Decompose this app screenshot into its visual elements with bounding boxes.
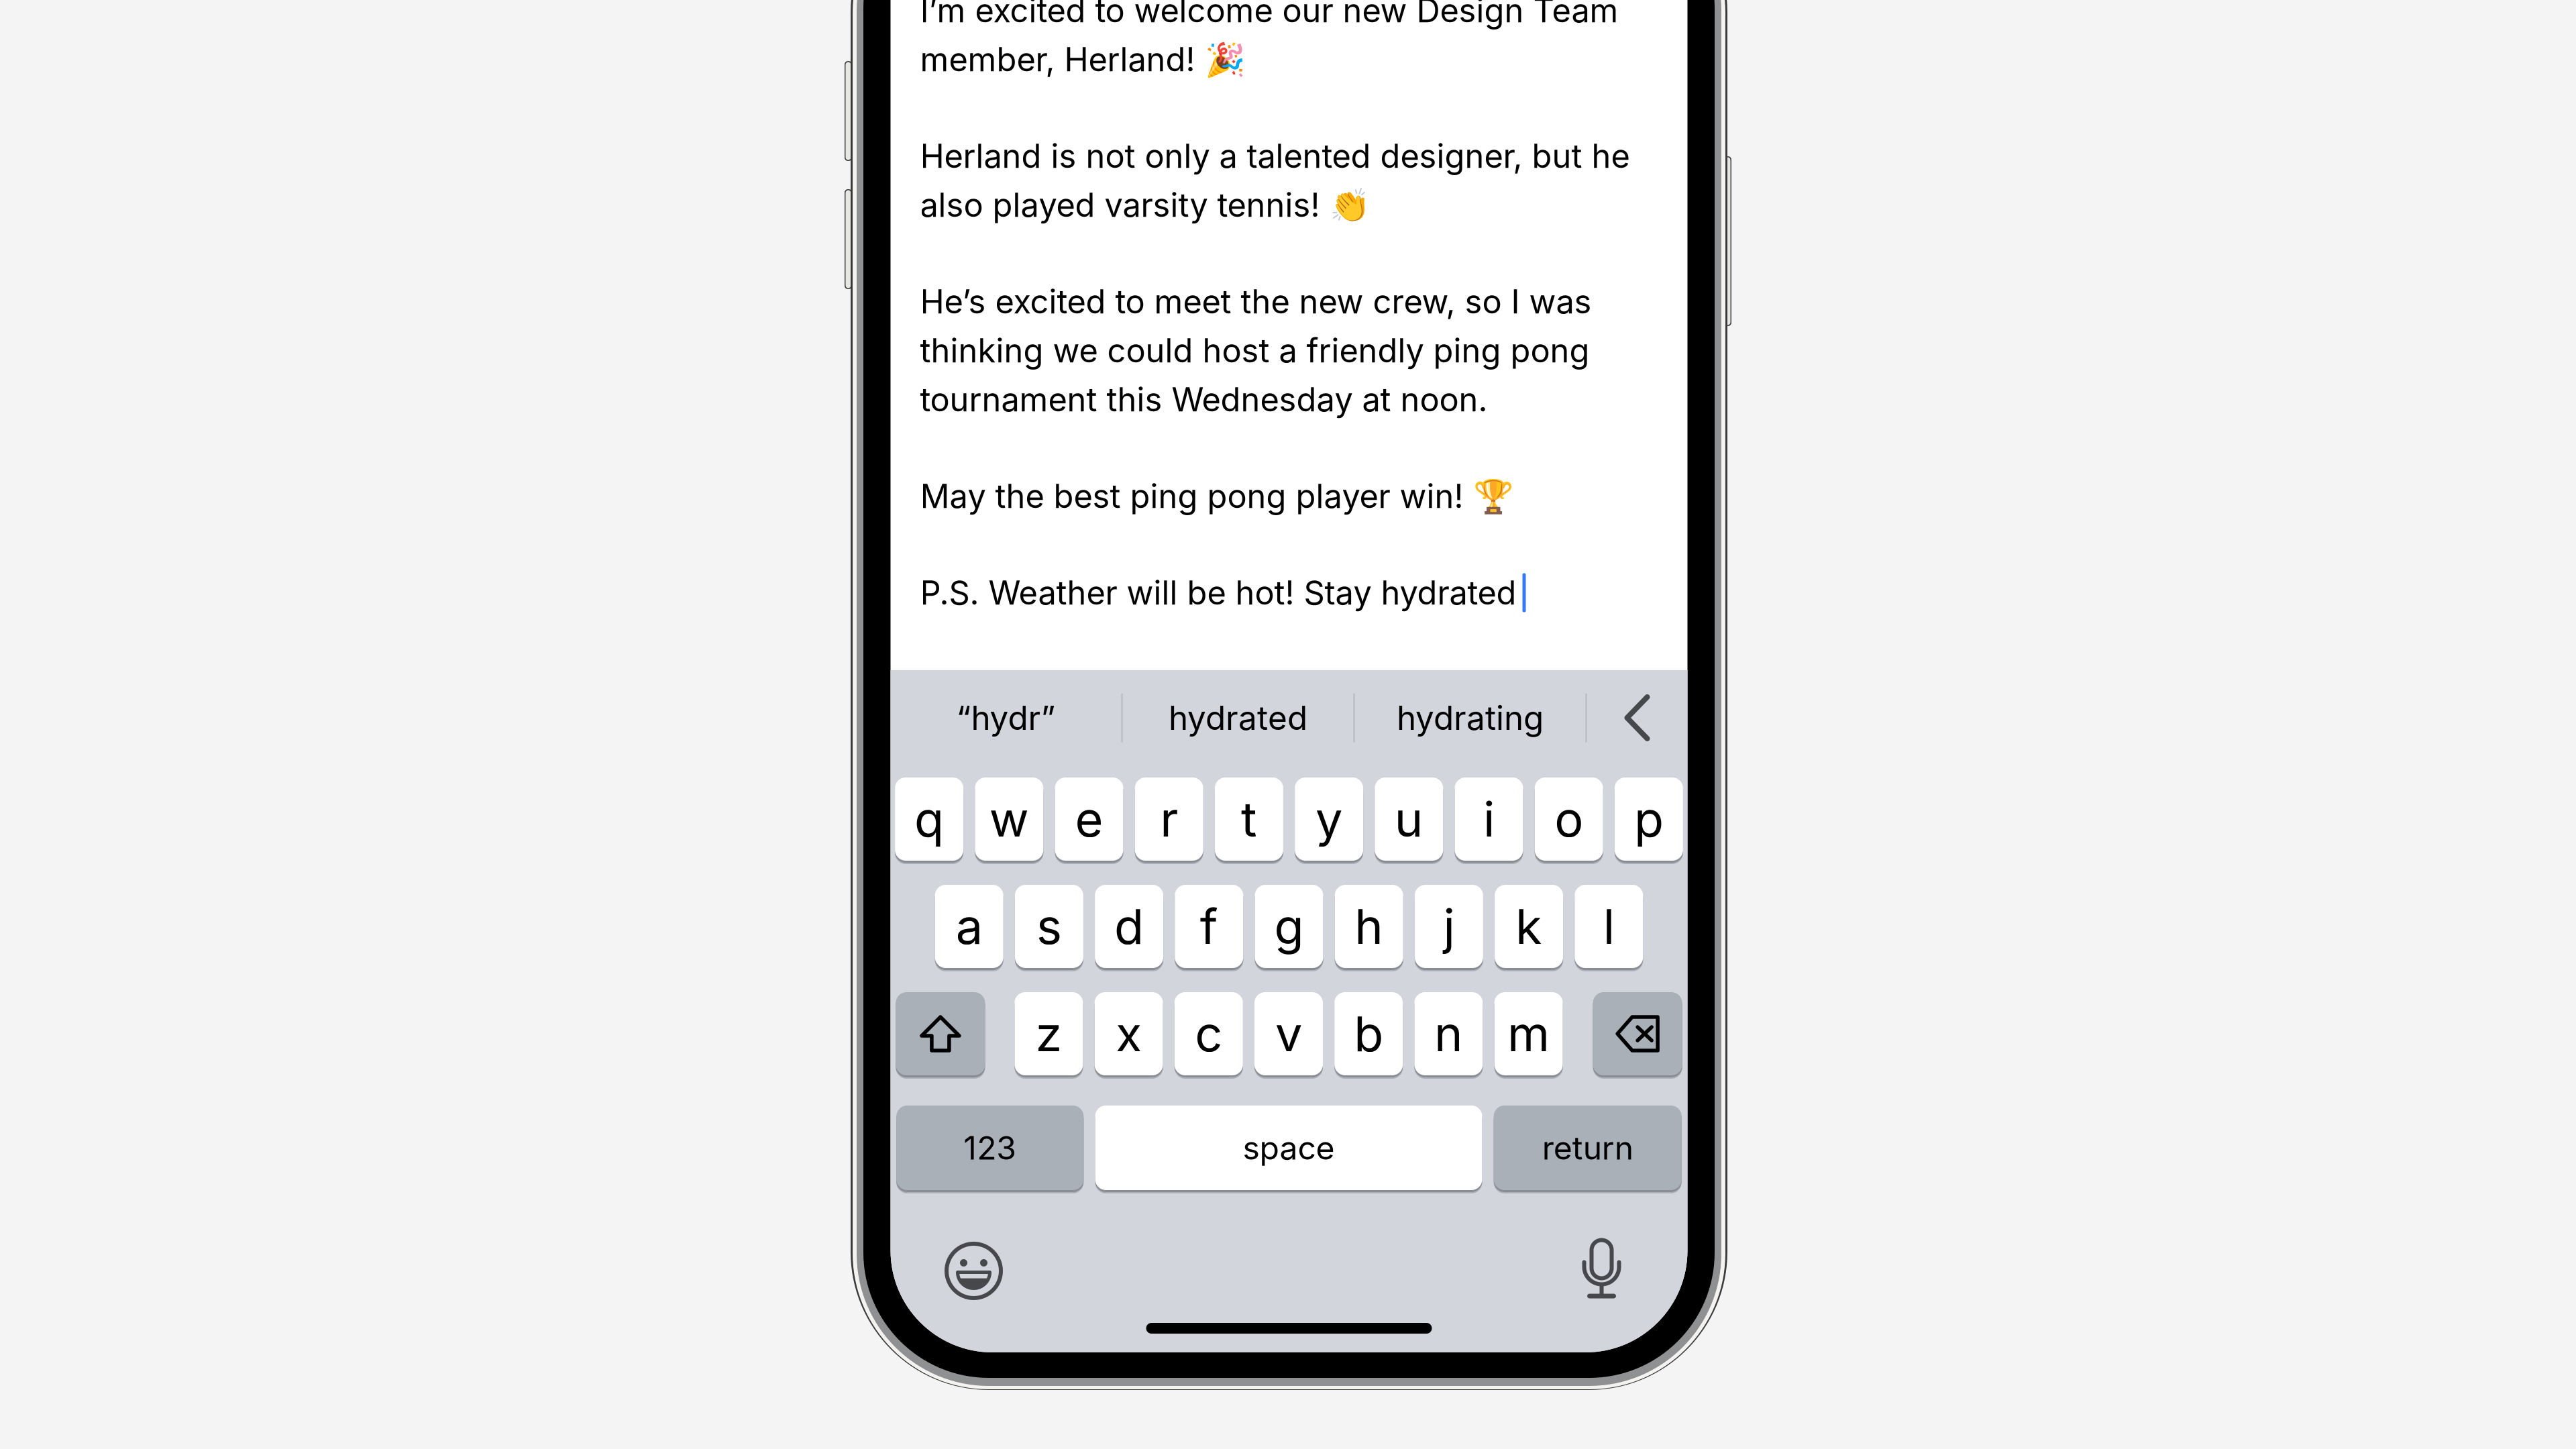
button[interactable]: v (1254, 992, 1323, 1075)
staticText: hydrating (1397, 698, 1544, 738)
button[interactable]: space (1095, 1106, 1482, 1190)
button[interactable]: o (1535, 777, 1603, 861)
staticText: u (1395, 790, 1423, 848)
button[interactable]: g (1255, 885, 1323, 968)
staticText: i (1483, 790, 1495, 848)
button[interactable]: d (1095, 885, 1163, 968)
staticText: also played varsity tennis! 👏 (920, 185, 1370, 225)
staticText: q (914, 790, 944, 848)
staticText: d (1114, 897, 1144, 956)
button[interactable]: t (1215, 777, 1283, 861)
staticText: w (989, 790, 1029, 848)
button[interactable]: e (1055, 777, 1123, 861)
staticText: k (1515, 897, 1542, 956)
button[interactable]: j (1415, 885, 1483, 968)
button[interactable]: “hydr” (891, 670, 1121, 765)
staticText: I’m excited to welcome our new Design Te… (920, 0, 1618, 30)
staticText: y (1316, 790, 1342, 848)
button[interactable]: l (1575, 885, 1643, 968)
button[interactable]: Hide predictions (1587, 670, 1687, 765)
staticText: z (1035, 1005, 1062, 1063)
button[interactable]: b (1334, 992, 1403, 1075)
staticText: member, Herland! 🎉 (920, 40, 1245, 79)
staticText: g (1274, 897, 1304, 956)
staticText: h (1355, 897, 1383, 956)
button[interactable]: return (1494, 1106, 1682, 1190)
button[interactable]: s (1015, 885, 1083, 968)
staticText: May the best ping pong player win! 🏆 (920, 476, 1514, 516)
staticText: e (1075, 790, 1103, 848)
staticText: “hydr” (956, 698, 1056, 738)
staticText: 123 (964, 1128, 1017, 1167)
button[interactable]: 123 (896, 1106, 1084, 1190)
button[interactable]: a (935, 885, 1003, 968)
staticText: P.S. Weather will be hot! Stay hydrated (920, 573, 1516, 612)
staticText: m (1507, 1005, 1550, 1063)
button[interactable]: q (895, 777, 963, 861)
staticText: c (1195, 1005, 1222, 1063)
staticText: t (1241, 790, 1257, 848)
staticText: v (1275, 1005, 1302, 1063)
button[interactable]: k (1495, 885, 1563, 968)
staticText: o (1554, 790, 1583, 848)
staticText: tournament this Wednesday at noon. (920, 380, 1488, 419)
button[interactable]: m (1494, 992, 1563, 1075)
staticText: thinking we could host a friendly ping p… (920, 331, 1590, 370)
staticText: f (1200, 897, 1218, 956)
button[interactable]: u (1375, 777, 1443, 861)
staticText: Herland is not only a talented designer,… (920, 136, 1630, 176)
button[interactable]: Shift (896, 992, 985, 1075)
button[interactable]: r (1135, 777, 1203, 861)
button[interactable]: w (975, 777, 1043, 861)
button[interactable]: i (1455, 777, 1523, 861)
button[interactable]: Delete (1593, 992, 1682, 1075)
button[interactable]: Dictation (1582, 1238, 1621, 1296)
staticText: a (956, 897, 983, 956)
button[interactable]: Emoji keyboard (946, 1238, 1002, 1298)
staticText: s (1036, 897, 1062, 956)
staticText: r (1160, 790, 1178, 848)
staticText: n (1434, 1005, 1463, 1063)
button[interactable]: c (1174, 992, 1243, 1075)
staticText: x (1116, 1005, 1142, 1063)
button[interactable]: hydrating (1355, 670, 1586, 765)
button[interactable]: y (1295, 777, 1363, 861)
button[interactable]: f (1175, 885, 1243, 968)
button[interactable]: x (1095, 992, 1163, 1075)
staticText: return (1542, 1128, 1633, 1167)
button[interactable]: n (1414, 992, 1483, 1075)
staticText: p (1634, 790, 1664, 848)
staticText: l (1603, 897, 1615, 956)
staticText: space (1243, 1128, 1335, 1167)
staticText: hydrated (1169, 698, 1307, 738)
button[interactable]: p (1615, 777, 1683, 861)
staticText: He’s excited to meet the new crew, so I … (920, 282, 1592, 321)
button[interactable]: h (1335, 885, 1403, 968)
staticText: b (1354, 1005, 1383, 1063)
staticText: j (1443, 897, 1455, 956)
button[interactable]: hydrated (1123, 670, 1353, 765)
button[interactable]: z (1015, 992, 1083, 1075)
